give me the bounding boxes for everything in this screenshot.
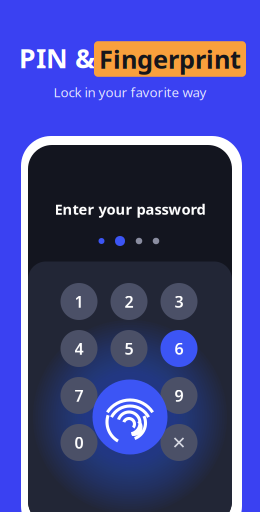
staticText: 3 xyxy=(174,291,183,312)
staticText: 2 xyxy=(124,291,133,312)
button[interactable]: 4 xyxy=(60,330,97,367)
staticText: Lock in your favorite way xyxy=(53,83,206,101)
button[interactable]: 0 xyxy=(60,424,97,461)
staticText: PIN & xyxy=(19,40,95,76)
staticText: 4 xyxy=(74,338,83,359)
staticText: 0 xyxy=(74,432,83,453)
staticText: Fingerprint xyxy=(99,42,241,76)
staticText: 1 xyxy=(74,291,83,312)
button[interactable]: 9 xyxy=(160,377,197,414)
button[interactable]: 5 xyxy=(110,330,147,367)
button[interactable] xyxy=(160,424,197,461)
button[interactable]: 2 xyxy=(110,283,147,320)
button[interactable]: 1 xyxy=(60,283,97,320)
button[interactable]: 3 xyxy=(160,283,197,320)
button[interactable]: 6 xyxy=(160,330,197,367)
staticText: 6 xyxy=(174,338,183,359)
staticText: 5 xyxy=(124,338,133,359)
button[interactable]: Unlock with fingerprint xyxy=(92,379,167,454)
staticText: 7 xyxy=(74,385,83,406)
button[interactable]: 7 xyxy=(60,377,97,414)
staticText: 9 xyxy=(174,385,183,406)
staticText: Enter your password xyxy=(54,199,205,219)
